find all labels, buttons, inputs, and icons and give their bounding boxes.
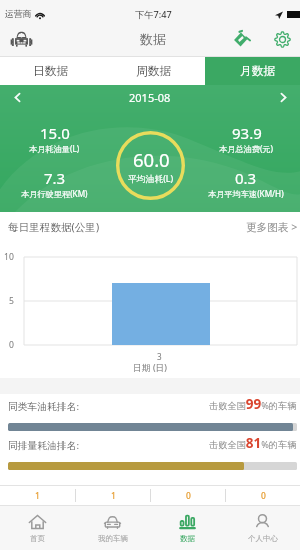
staticText: 本月总油费(元) [219, 143, 274, 154]
button[interactable]: 我的车辆 [75, 506, 150, 550]
staticText: 93.9 [232, 123, 262, 143]
staticText: 数据 [140, 31, 166, 47]
button[interactable]: My vehicle [6, 24, 36, 54]
staticText: 日期 (日) [133, 362, 167, 374]
staticText: 5 [9, 295, 14, 307]
staticText: 1 [35, 490, 40, 502]
button[interactable]: 数据 [150, 506, 225, 550]
staticText: 本月平均车速(KM/H) [208, 188, 284, 199]
staticText: 10 [4, 251, 14, 263]
staticText: 15.0 [40, 123, 70, 143]
staticText: 每日里程数据(公里) [8, 220, 100, 234]
staticText: 0.3 [235, 168, 257, 188]
button[interactable]: Previous month [6, 86, 28, 108]
staticText: 本月行驶里程(KM) [21, 188, 88, 199]
staticText: 平均油耗(L) [128, 173, 174, 185]
staticText: 首页 [30, 534, 45, 543]
button[interactable]: 周数据 [102, 57, 205, 85]
staticText: 周数据 [136, 64, 172, 79]
staticText: 个人中心 [248, 534, 278, 543]
staticText: 同排量耗油排名: [8, 439, 80, 452]
button[interactable]: Next month [272, 86, 294, 108]
staticText: 数据 [180, 534, 195, 543]
staticText: 0 [261, 490, 266, 502]
staticText: 1 [111, 490, 116, 502]
staticText: 本月耗油量(L) [29, 143, 80, 154]
button[interactable]: 首页 [0, 506, 75, 550]
button[interactable]: Add refuel record [229, 26, 255, 52]
button[interactable]: 日数据 [0, 57, 102, 85]
staticText: 0 [9, 339, 14, 351]
staticText: 0 [186, 490, 191, 502]
staticText: 同类车油耗排名: [8, 400, 80, 413]
staticText: 日数据 [33, 64, 69, 79]
staticText: 月数据 [240, 64, 276, 79]
staticText: 更多图表 > [246, 220, 298, 234]
button[interactable]: Settings [269, 26, 295, 52]
staticText: 下午7:47 [135, 8, 172, 21]
button[interactable]: 月数据 [205, 57, 300, 85]
staticText: 击败全国99%的车辆 [209, 395, 297, 413]
button[interactable]: 更多图表 > [245, 219, 299, 235]
staticText: 我的车辆 [98, 534, 128, 543]
staticText: 击败全国81%的车辆 [209, 434, 297, 452]
staticText: 运营商 [5, 9, 32, 20]
staticText: 3 [157, 351, 162, 362]
staticText: 60.0 [133, 147, 170, 172]
button[interactable]: 个人中心 [225, 506, 300, 550]
staticText: 7.3 [44, 168, 66, 188]
staticText: 2015-08 [129, 90, 171, 105]
